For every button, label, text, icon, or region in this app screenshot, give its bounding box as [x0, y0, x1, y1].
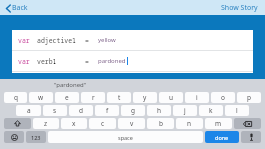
staticText: j: [184, 106, 186, 115]
button[interactable]: s: [43, 105, 67, 116]
button[interactable]: Back: [4, 2, 30, 14]
button[interactable]: n: [176, 118, 203, 129]
staticText: n: [187, 119, 192, 128]
staticText: c: [101, 119, 105, 128]
button[interactable]: pardoned: [95, 55, 248, 67]
staticText: v: [130, 119, 134, 128]
button[interactable]: k: [199, 105, 223, 116]
staticText: k: [209, 106, 213, 115]
button[interactable]: done: [205, 131, 239, 143]
staticText: a: [27, 106, 31, 115]
button[interactable]: Emoji: [4, 131, 24, 143]
button[interactable]: f: [95, 105, 119, 116]
button[interactable]: "pardoned": [52, 81, 89, 89]
staticText: u: [169, 93, 174, 102]
staticText: m: [215, 119, 222, 128]
button[interactable]: Show Story: [218, 2, 261, 14]
staticText: 123: [31, 134, 41, 141]
staticText: i: [196, 93, 198, 102]
staticText: Show Story: [221, 3, 258, 13]
button[interactable]: q: [4, 92, 27, 103]
button[interactable]: p: [237, 92, 261, 103]
staticText: verb1: [37, 57, 57, 66]
button[interactable]: u: [159, 92, 183, 103]
button[interactable]: b: [147, 118, 174, 129]
button[interactable]: x: [61, 118, 87, 129]
button[interactable]: l: [225, 105, 249, 116]
staticText: pardoned: [98, 57, 126, 65]
button[interactable]: o: [211, 92, 235, 103]
staticText: yellow: [98, 36, 116, 44]
staticText: done: [215, 134, 229, 141]
staticText: g: [131, 106, 135, 115]
button[interactable]: Dictation: [241, 131, 261, 143]
button[interactable]: g: [121, 105, 145, 116]
button[interactable]: Numbers: [26, 131, 46, 143]
staticText: s: [53, 106, 57, 115]
staticText: p: [247, 93, 251, 102]
button[interactable]: v: [118, 118, 145, 129]
button[interactable]: c: [89, 118, 116, 129]
button[interactable]: Backspace: [234, 118, 261, 129]
button[interactable]: Shift: [4, 118, 31, 129]
button[interactable]: m: [205, 118, 232, 129]
button[interactable]: var: [12, 51, 253, 71]
button[interactable]: r: [81, 92, 105, 103]
button[interactable]: y: [133, 92, 157, 103]
staticText: l: [236, 106, 238, 115]
button[interactable]: a: [16, 105, 41, 116]
staticText: b: [159, 119, 163, 128]
button[interactable]: z: [33, 118, 59, 129]
button[interactable]: j: [173, 105, 197, 116]
staticText: x: [72, 119, 76, 128]
staticText: q: [14, 93, 18, 102]
button[interactable]: space: [48, 131, 203, 143]
staticText: f: [106, 106, 109, 115]
staticText: adjective1: [37, 36, 77, 45]
staticText: d: [79, 106, 83, 115]
staticText: =: [85, 57, 89, 66]
staticText: var: [18, 57, 30, 66]
staticText: =: [85, 36, 89, 45]
staticText: space: [118, 134, 133, 141]
button[interactable]: t: [107, 92, 131, 103]
button[interactable]: yellow: [95, 34, 248, 46]
staticText: var: [18, 36, 30, 45]
staticText: "pardoned": [54, 81, 87, 89]
button[interactable]: var: [12, 30, 253, 50]
staticText: Back: [12, 3, 28, 13]
staticText: o: [221, 93, 225, 102]
staticText: e: [65, 93, 69, 102]
staticText: t: [118, 93, 121, 102]
button[interactable]: e: [55, 92, 79, 103]
button[interactable]: i: [185, 92, 209, 103]
staticText: r: [92, 93, 95, 102]
button[interactable]: d: [69, 105, 93, 116]
button[interactable]: w: [29, 92, 53, 103]
staticText: h: [157, 106, 162, 115]
staticText: y: [143, 93, 147, 102]
staticText: z: [44, 119, 48, 128]
button[interactable]: h: [147, 105, 171, 116]
staticText: w: [38, 93, 44, 102]
